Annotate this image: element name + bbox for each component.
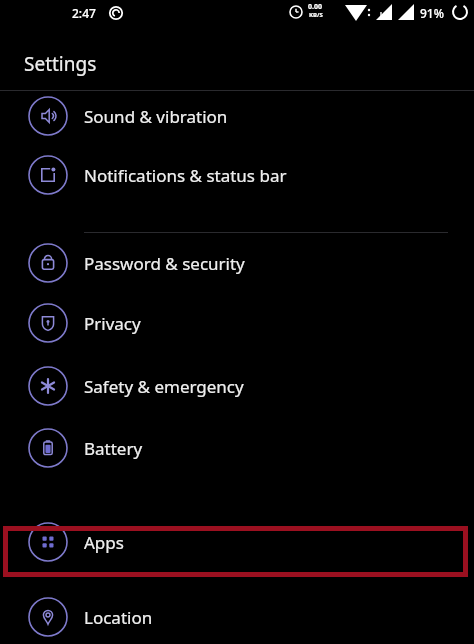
button[interactable]: Notifications & status bar <box>0 146 474 204</box>
staticText: Apps <box>84 531 124 554</box>
button[interactable]: Sound & vibration <box>0 87 474 145</box>
staticText: Notifications & status bar <box>84 164 287 187</box>
staticText: 91% <box>420 5 444 21</box>
staticText: Safety & emergency <box>84 375 244 398</box>
staticText: Battery <box>84 437 143 460</box>
button[interactable]: Location <box>0 588 474 644</box>
staticText: 2:47 <box>72 5 96 21</box>
staticText: Sound & vibration <box>84 105 228 128</box>
button[interactable]: Safety & emergency <box>0 357 474 415</box>
button[interactable]: Battery <box>0 419 474 477</box>
staticText: 0.00 <box>308 2 322 12</box>
staticText: Settings <box>24 51 97 77</box>
staticText: Location <box>84 606 153 629</box>
staticText: Privacy <box>84 312 141 335</box>
button[interactable]: Apps <box>0 513 474 571</box>
button[interactable]: Password & security <box>0 234 474 292</box>
button[interactable]: Privacy <box>0 294 474 352</box>
staticText: KB/S <box>309 11 323 19</box>
staticText: Password & security <box>84 252 245 275</box>
